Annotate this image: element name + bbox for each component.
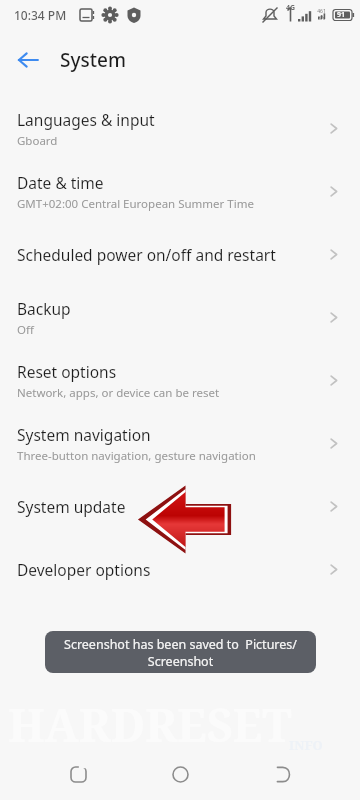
button[interactable]: Languages & input — [0, 97, 360, 160]
staticText: System navigation — [17, 424, 151, 445]
button[interactable]: System update — [0, 475, 360, 538]
button[interactable]: Home — [160, 754, 200, 794]
staticText: 4G — [286, 3, 296, 13]
button[interactable]: Developer options — [0, 538, 360, 601]
staticText: Scheduled power on/off and restart — [17, 244, 276, 265]
button[interactable]: Back — [262, 754, 302, 794]
staticText: Three-button navigation, gesture navigat… — [17, 448, 256, 464]
staticText: System update — [17, 496, 126, 517]
staticText: GMT+02:00 Central European Summer Time — [17, 196, 254, 212]
button[interactable]: Backup — [0, 286, 360, 349]
staticText: Network, apps, or device can be reset — [17, 385, 220, 401]
staticText: Languages & input — [17, 109, 155, 130]
staticText: System — [60, 47, 126, 73]
staticText: Screenshot has been saved to Pictures/ S… — [64, 636, 297, 669]
button[interactable]: Scheduled power on/off and restart — [0, 223, 360, 286]
staticText: Backup — [17, 298, 71, 319]
staticText: Date & time — [17, 172, 104, 193]
staticText: Developer options — [17, 559, 151, 580]
staticText: INFO — [289, 736, 323, 754]
button[interactable]: Back — [6, 38, 50, 82]
staticText: 461 B/s — [317, 8, 326, 21]
staticText: 10:34 PM — [14, 7, 67, 23]
staticText: 91 — [337, 10, 346, 20]
staticText: Reset options — [17, 361, 117, 382]
button[interactable]: Date & time — [0, 160, 360, 223]
button[interactable]: Reset options — [0, 349, 360, 412]
button[interactable]: Recent apps — [58, 754, 98, 794]
staticText: Gboard — [17, 133, 58, 149]
button[interactable]: System navigation — [0, 412, 360, 475]
staticText: Off — [17, 322, 34, 338]
